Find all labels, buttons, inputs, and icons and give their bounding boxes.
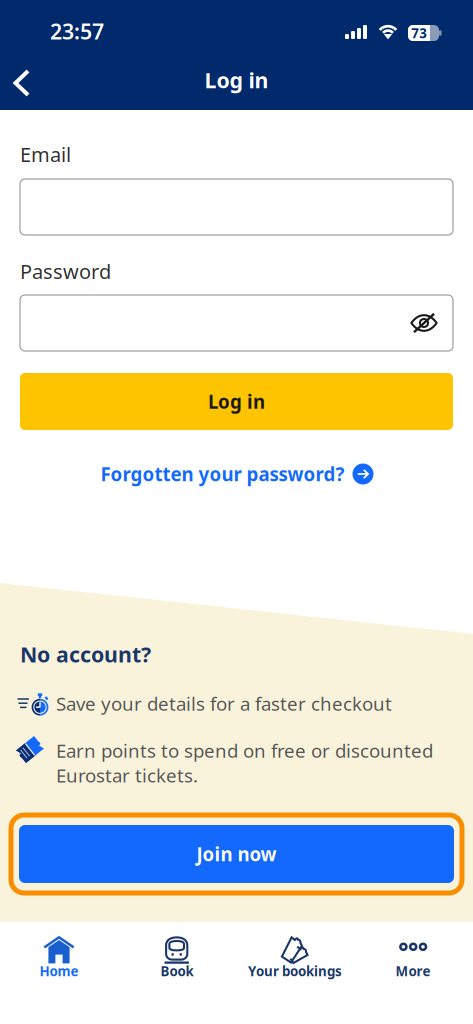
button[interactable]: More [354,925,472,995]
staticText: More [395,962,430,980]
staticText: Join now [196,842,276,866]
staticText: Home [39,962,78,980]
button[interactable]: Your bookings [236,925,354,995]
staticText: 73 [411,24,427,42]
staticText: Earn points to spend on free or discount… [56,738,433,788]
button[interactable]: Forgotten your password? [87,456,387,492]
button[interactable]: Back [0,60,45,106]
staticText: Log in [204,66,268,94]
button[interactable]: Home [0,925,118,995]
button[interactable]: Book [118,925,236,995]
staticText: Log in [208,389,265,414]
staticText: Save your details for a faster checkout [56,691,392,716]
staticText: 23:57 [50,17,104,45]
staticText: Book [160,962,193,980]
staticText: Your bookings [248,962,342,980]
staticText: No account? [20,640,151,668]
staticText: Email [20,141,71,168]
staticText: Forgotten your password? [100,462,344,486]
staticText: Password [20,258,111,285]
button[interactable]: Join now [9,813,464,895]
button[interactable]: Log in [20,373,453,430]
